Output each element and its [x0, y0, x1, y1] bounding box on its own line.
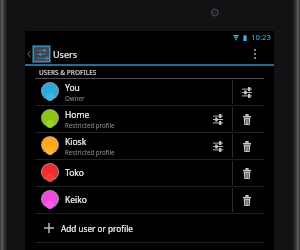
button[interactable]: Profile settings: [204, 106, 232, 132]
staticText: Toko: [65, 167, 84, 179]
staticText: Home: [65, 109, 90, 121]
button[interactable]: You: [35, 79, 232, 105]
button[interactable]: Profile settings: [233, 79, 264, 105]
staticText: Users: [53, 48, 77, 60]
button[interactable]: Toko: [35, 160, 232, 186]
button[interactable]: Add user or profile: [35, 214, 264, 242]
button[interactable]: Navigate up: [25, 43, 51, 64]
button[interactable]: Remove user: [233, 106, 264, 132]
staticText: Restricted profile: [65, 121, 115, 129]
button[interactable]: Keiko: [35, 187, 232, 213]
staticText: Keiko: [65, 194, 87, 206]
staticText: Owner: [65, 94, 85, 102]
button[interactable]: Remove user: [233, 133, 264, 159]
staticText: Add user or profile: [61, 223, 133, 234]
staticText: 10:23: [251, 32, 271, 43]
button[interactable]: Profile settings: [204, 133, 232, 159]
button[interactable]: Remove user: [233, 160, 264, 186]
staticText: You: [65, 82, 80, 94]
staticText: Kiosk: [65, 136, 87, 148]
button[interactable]: Remove user: [233, 187, 264, 213]
staticText: Restricted profile: [65, 148, 115, 156]
staticText: USERS & PROFILES: [39, 68, 97, 77]
button[interactable]: Home: [35, 106, 204, 132]
button[interactable]: Kiosk: [35, 133, 204, 159]
button[interactable]: More options: [247, 43, 263, 64]
